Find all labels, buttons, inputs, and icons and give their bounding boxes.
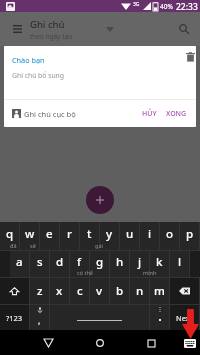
staticText: k [156,254,163,270]
button[interactable]: Space [50,305,149,330]
button[interactable]: a [10,251,29,277]
staticText: c [77,283,83,299]
button[interactable]: Comma, voice input [30,305,49,330]
staticText: l [178,254,182,270]
button[interactable]: x [50,278,69,304]
staticText: h [116,254,124,270]
staticText: có thể [77,269,93,276]
button[interactable]: k [150,251,169,277]
button[interactable]: m [150,278,169,304]
button[interactable]: n [130,278,149,304]
staticText: q [6,226,14,242]
staticText: a [16,254,23,270]
button[interactable]: Menu [4,16,30,42]
staticText: 40% [160,2,173,11]
button[interactable]: d [50,251,69,277]
staticText: ?123 [6,313,23,323]
button[interactable]: r [60,222,79,250]
button[interactable]: Search [172,17,196,41]
button[interactable]: o [160,222,179,250]
button[interactable]: t [80,222,99,250]
button[interactable]: w [20,222,39,250]
staticText: 22:33 [176,1,198,13]
button[interactable]: l [170,251,189,277]
button[interactable]: c [70,278,89,304]
staticText: y [106,226,113,242]
button[interactable]: y [100,222,119,250]
staticText: n [136,283,144,299]
staticText: b [116,283,124,299]
staticText: v [96,283,103,299]
staticText: HỦY [142,109,157,119]
staticText: o [166,226,174,242]
button[interactable]: f [70,251,89,277]
button[interactable]: p [180,222,199,250]
staticText: Ghi chú bổ sung [12,71,64,80]
button[interactable]: q [0,222,19,250]
button[interactable]: g [90,251,109,277]
button[interactable]: HỦY [139,105,160,123]
button[interactable]: Recent apps [139,331,163,355]
staticText: sẽ [30,242,36,249]
staticText: u [126,226,134,242]
button[interactable]: b [110,278,129,304]
button[interactable]: Home [88,331,112,355]
staticText: e [46,226,53,242]
staticText: đã [10,242,17,249]
staticText: x [56,283,63,299]
staticText: r [67,226,72,242]
button[interactable]: Backspace [170,278,199,304]
staticText: z [37,283,43,299]
button[interactable]: v [90,278,109,304]
staticText: Ghi chú cục bộ [24,109,76,119]
staticText: mình [143,269,157,276]
button[interactable]: u [120,222,139,250]
staticText: Chào bạn [12,55,45,65]
button[interactable]: Period [150,305,169,330]
staticText: t [87,226,92,242]
button[interactable]: Add note [86,186,114,214]
button[interactable]: Switch keyboard [178,331,200,355]
staticText: d [56,254,64,270]
button[interactable]: Delete note [179,46,196,68]
staticText: i [148,226,152,242]
button[interactable]: j [130,251,149,277]
staticText: m [154,283,165,299]
staticText: theo ngày tạo [30,32,73,41]
button[interactable]: Back [36,331,60,355]
staticText: j [138,254,142,270]
button[interactable]: s [30,251,49,277]
button[interactable]: XONG [163,105,190,123]
button[interactable]: Sort order [100,19,120,39]
staticText: XONG [166,109,187,119]
staticText: , [38,314,41,326]
button[interactable]: z [30,278,49,304]
staticText: f [77,254,82,270]
button[interactable]: h [110,251,129,277]
button[interactable]: ?123 [0,305,29,330]
button[interactable]: e [40,222,59,250]
staticText: p [186,226,194,242]
staticText: g [96,254,104,270]
staticText: gái [95,242,103,249]
button[interactable]: i [140,222,159,250]
staticText: Next [176,313,193,323]
staticText: 3G [133,1,140,8]
button[interactable]: Shift [0,278,29,304]
staticText: w [25,226,35,242]
staticText: s [37,254,43,270]
staticText: Ghi chú [30,18,65,31]
button[interactable]: Next [170,305,199,330]
